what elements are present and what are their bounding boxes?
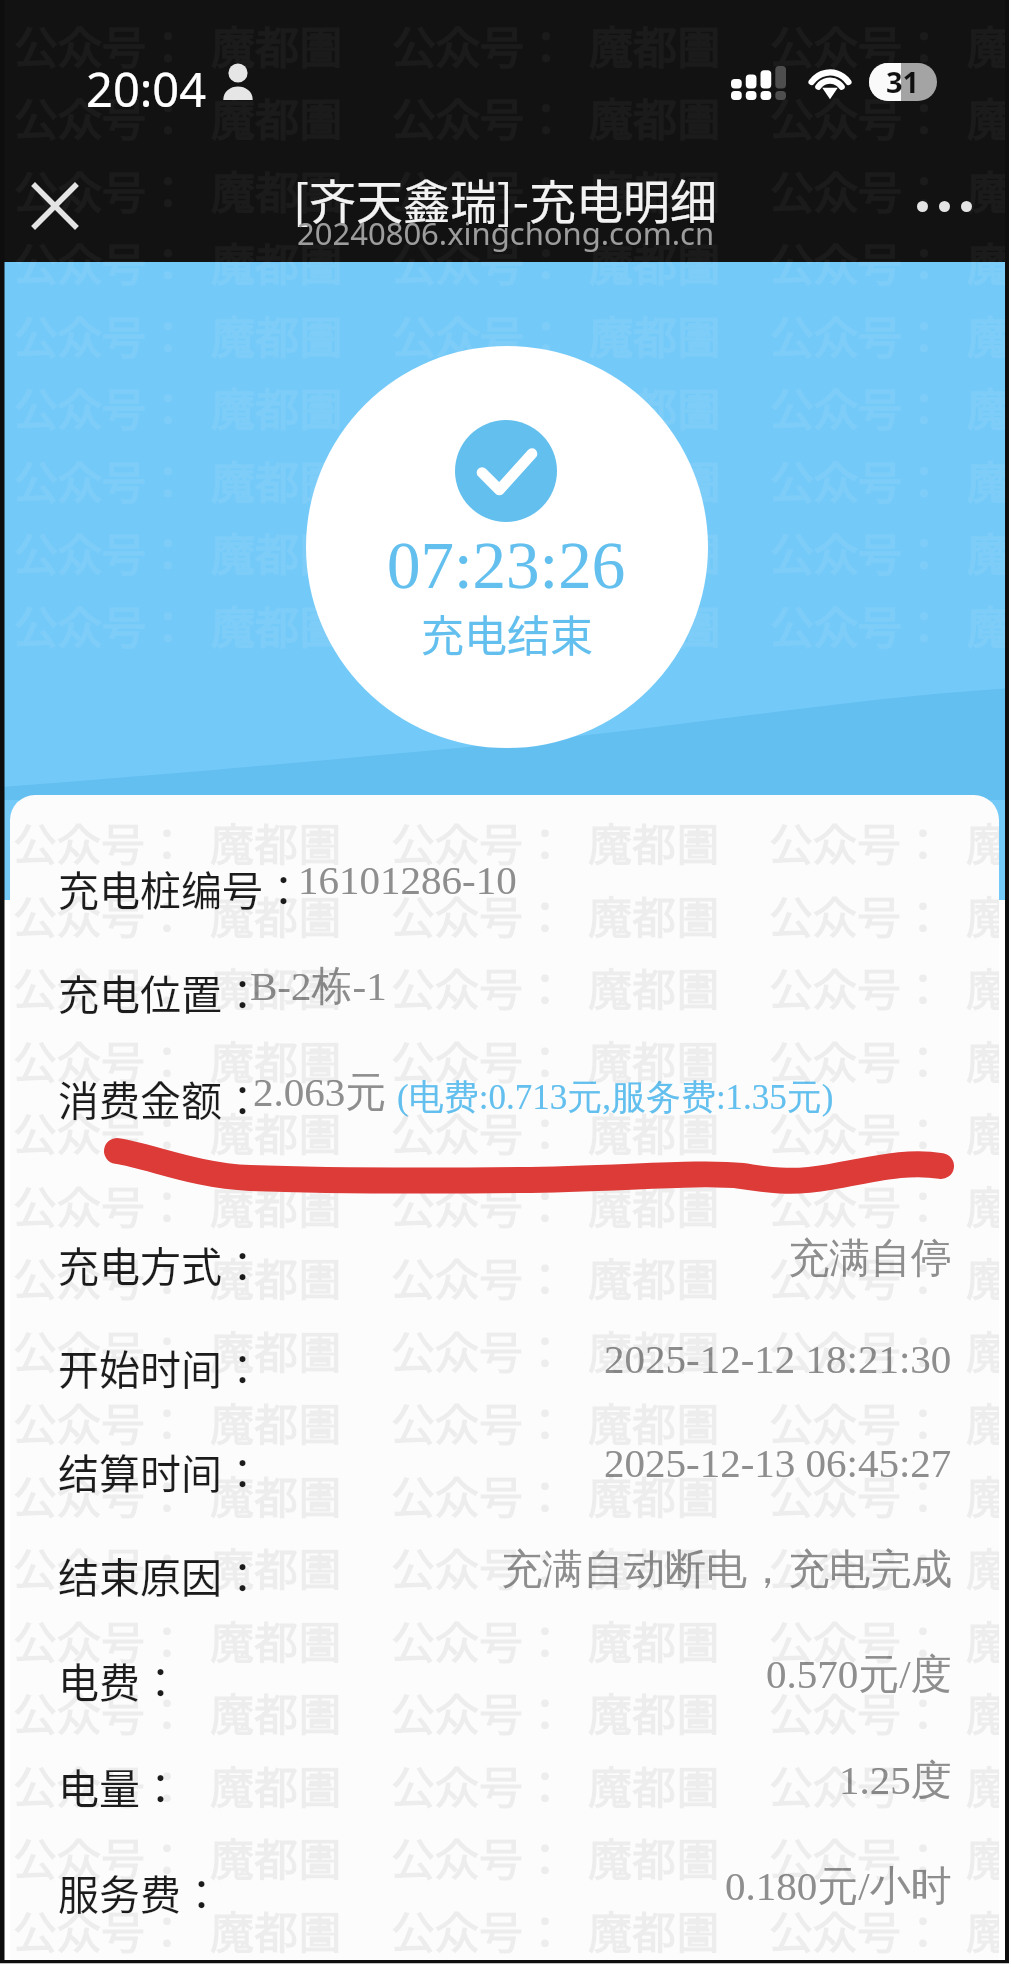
staticText: 公众号： — [769, 1173, 945, 1237]
staticText: 公众号： — [13, 1608, 189, 1672]
staticText: 魔都圕 — [966, 1028, 999, 1092]
staticText: 公众号： — [391, 1898, 567, 1960]
staticText: 公众号： — [13, 1753, 189, 1817]
staticText: 魔都圕 — [967, 448, 1011, 512]
staticText: 公众号： — [392, 13, 568, 77]
staticText: 公众号： — [13, 1390, 189, 1454]
staticText: 魔都圕 — [966, 1100, 999, 1164]
staticText: 31 — [886, 63, 920, 100]
staticText: 魔都圕 — [588, 1173, 720, 1237]
staticText: 魔都圕 — [967, 520, 1011, 584]
staticText: 魔都圕 — [967, 158, 1011, 222]
staticText: 魔都圕 — [967, 375, 1011, 439]
staticText: 公众号： — [770, 375, 946, 439]
staticText: 魔都圕 — [588, 1680, 720, 1744]
staticText: 公众号： — [770, 303, 946, 367]
staticText: 电费： — [58, 1650, 181, 1709]
staticText: 结算时间： — [58, 1441, 263, 1500]
staticText: 魔都圕 — [211, 262, 343, 294]
staticText: 魔都圕 — [967, 85, 1011, 149]
staticText: 魔都圕 — [966, 883, 999, 947]
staticText: 魔都圕 — [210, 1825, 342, 1889]
staticText: 魔都圕 — [210, 1173, 342, 1237]
staticText: 魔都圕 — [589, 375, 721, 439]
staticText: 公众号： — [391, 810, 567, 874]
staticText: 魔都圕 — [589, 593, 721, 657]
staticText: 魔都圕 — [210, 1535, 342, 1599]
staticText: 公众号： — [392, 375, 568, 439]
staticText: 公众号： — [13, 1898, 189, 1960]
staticText: 魔都圕 — [589, 520, 721, 584]
staticText: 魔都圕 — [210, 1028, 342, 1092]
staticText: 魔都圕 — [966, 1753, 999, 1817]
staticText: 魔都圕 — [966, 1173, 999, 1237]
staticText: 魔都圕 — [966, 1390, 999, 1454]
staticText: 魔都圕 — [589, 13, 721, 77]
staticText: 魔都圕 — [210, 955, 342, 1019]
staticText: 魔都圕 — [588, 1898, 720, 1960]
staticText: 魔都圕 — [588, 955, 720, 1019]
staticText: 魔都圕 — [967, 0, 1011, 4]
staticText: 07:23:26 — [387, 528, 626, 602]
staticText: 魔都圕 — [211, 593, 343, 657]
staticText: 公众号： — [13, 1318, 189, 1382]
staticText: 魔都圕 — [966, 1608, 999, 1672]
staticText: 魔都圕 — [967, 262, 1011, 294]
staticText: 公众号： — [769, 1608, 945, 1672]
staticText: 公众号： — [770, 13, 946, 77]
staticText: 公众号： — [770, 158, 946, 222]
staticText: 公众号： — [770, 593, 946, 657]
staticText: 魔都圕 — [211, 13, 343, 77]
staticText: 公众号： — [392, 230, 568, 262]
staticText: 魔都圕 — [588, 1028, 720, 1092]
staticText: 公众号： — [13, 1535, 189, 1599]
staticText: 公众号： — [391, 1318, 567, 1382]
staticText: 消费金额： — [58, 1068, 263, 1127]
staticText: 魔都圕 — [966, 955, 999, 1019]
staticText: 公众号： — [769, 1898, 945, 1960]
staticText: 公众号： — [769, 810, 945, 874]
staticText: 魔都圕 — [211, 158, 343, 222]
staticText: 魔都圕 — [588, 1753, 720, 1817]
staticText: 1.25度 — [839, 1755, 952, 1807]
staticText: 魔都圕 — [966, 1898, 999, 1960]
staticText: 公众号： — [13, 810, 189, 874]
staticText: 魔都圕 — [588, 1608, 720, 1672]
staticText: 魔都圕 — [210, 1463, 342, 1527]
staticText: 魔都圕 — [211, 303, 343, 367]
staticText: 公众号： — [392, 520, 568, 584]
staticText: 20:04 — [86, 57, 207, 121]
staticText: 魔都圕 — [966, 1680, 999, 1744]
staticText: 电量： — [58, 1756, 181, 1815]
staticText: 公众号： — [13, 1463, 189, 1527]
staticText: 魔都圕 — [967, 593, 1011, 657]
staticText: 公众号： — [14, 230, 190, 262]
staticText: 公众号： — [391, 1608, 567, 1672]
staticText: 公众号： — [769, 1390, 945, 1454]
staticText: 公众号： — [14, 13, 190, 77]
staticText: 公众号： — [13, 955, 189, 1019]
staticText: 公众号： — [14, 448, 190, 512]
staticText: 公众号： — [392, 593, 568, 657]
staticText: 公众号： — [391, 883, 567, 947]
staticText: 魔都圕 — [588, 883, 720, 947]
staticText: 魔都圕 — [588, 1390, 720, 1454]
staticText: 魔都圕 — [589, 448, 721, 512]
staticText: 公众号： — [14, 593, 190, 657]
staticText: 公众号： — [391, 1753, 567, 1817]
button[interactable]: Close — [17, 168, 93, 244]
staticText: 魔都圕 — [589, 262, 721, 294]
staticText: 结束原因： — [58, 1545, 263, 1604]
staticText: 魔都圕 — [211, 85, 343, 149]
staticText: 公众号： — [14, 85, 190, 149]
staticText: 服务费： — [58, 1862, 222, 1921]
staticText: 魔都圕 — [588, 1463, 720, 1527]
button[interactable]: More options — [906, 168, 982, 244]
staticText: 公众号： — [769, 1680, 945, 1744]
staticText: 公众号： — [391, 1100, 567, 1164]
